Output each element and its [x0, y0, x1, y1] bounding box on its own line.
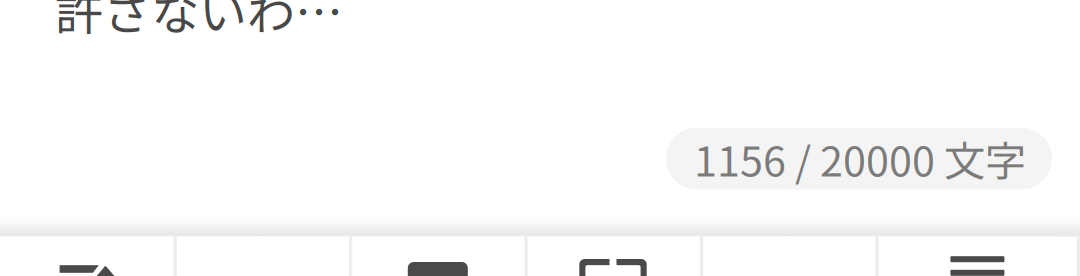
button[interactable]: Focus mode	[526, 236, 702, 276]
staticText: 1156 / 20000 文字	[694, 129, 1026, 189]
button[interactable]: Hide keyboard	[351, 236, 526, 276]
button[interactable]: Compose	[0, 236, 175, 276]
staticText: 許さないわ…	[55, 0, 343, 44]
button[interactable]: Menu	[877, 236, 1053, 276]
